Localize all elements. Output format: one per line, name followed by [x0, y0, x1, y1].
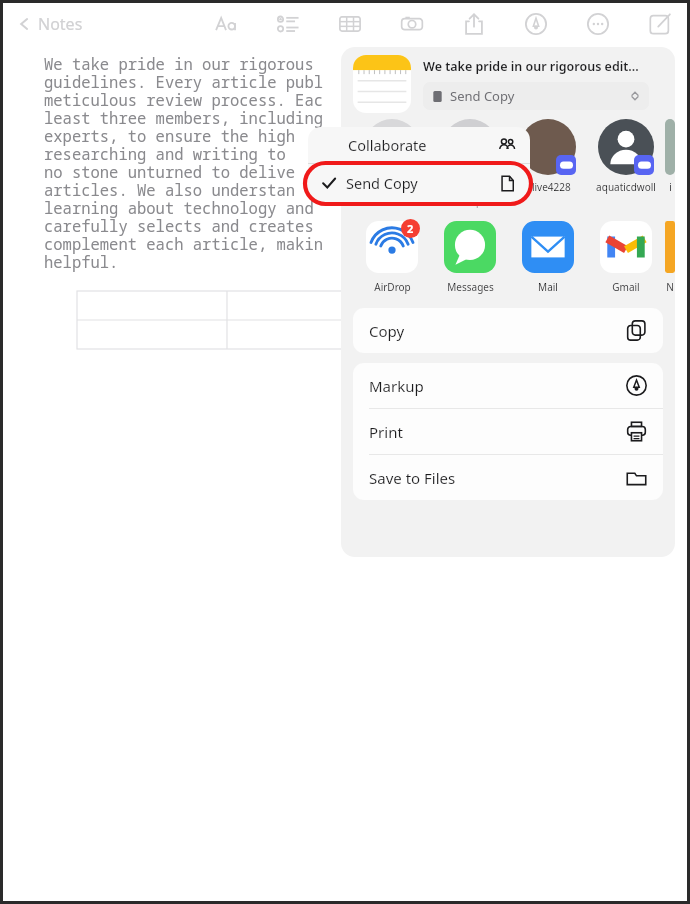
button[interactable]: Alphr and +639... — [431, 119, 509, 209]
staticText: Markup — [369, 376, 424, 396]
button[interactable]: i — [665, 119, 675, 194]
button[interactable]: Copy — [353, 308, 663, 353]
button[interactable]: Markup — [523, 11, 549, 37]
button[interactable]: ALphr Spy — [353, 119, 431, 194]
staticText: Mail — [538, 280, 558, 294]
staticText: Messages — [447, 280, 494, 294]
button[interactable]: Camera — [399, 11, 425, 37]
staticText: 2 — [407, 221, 414, 236]
button[interactable]: Checklist — [275, 11, 301, 37]
button[interactable]: Compose — [647, 11, 673, 37]
staticText: Send Copy — [346, 173, 418, 193]
button[interactable]: Messages — [431, 219, 509, 294]
staticText: Alphr and +639... — [431, 180, 509, 194]
staticText: ALphr Spy — [367, 180, 417, 194]
button[interactable]: Mail — [509, 219, 587, 294]
button[interactable]: We take pride in our rigorous edit... — [353, 55, 663, 113]
staticText: Print — [369, 422, 403, 442]
staticText: We take pride in our rigorous edit... — [423, 58, 639, 75]
button[interactable]: Gmail — [587, 219, 665, 294]
button[interactable]: Share — [461, 11, 487, 37]
staticText: Copy — [369, 321, 405, 341]
button[interactable]: aquaticdwoll — [587, 119, 665, 194]
button[interactable]: Print — [353, 409, 663, 454]
staticText: Collaborate — [348, 135, 427, 155]
button[interactable]: Save to Files — [353, 455, 663, 500]
button[interactable]: 2 — [353, 219, 431, 294]
staticText: AirDrop — [374, 280, 411, 294]
button[interactable]: alive4228 — [509, 119, 587, 194]
button[interactable]: Notes — [17, 13, 83, 35]
button[interactable]: Markup — [353, 363, 663, 408]
button[interactable]: Send Copy — [308, 164, 530, 202]
staticText: Save to Files — [369, 468, 456, 488]
button[interactable]: Send Copy — [432, 87, 640, 105]
staticText: alive4228 — [526, 180, 571, 194]
staticText: i — [669, 180, 672, 194]
button[interactable]: N — [665, 219, 675, 294]
staticText: 2 People — [451, 196, 490, 209]
button[interactable]: Table — [337, 11, 363, 37]
staticText: Notes — [38, 13, 83, 35]
staticText: Gmail — [612, 280, 640, 294]
button[interactable]: Collaborate — [308, 127, 530, 163]
staticText: Send Copy — [450, 87, 515, 105]
staticText: We take pride in our rigorous guidelines… — [44, 53, 324, 273]
button[interactable]: More — [585, 11, 611, 37]
staticText: aquaticdwoll — [596, 180, 656, 194]
button[interactable]: Format text — [213, 11, 239, 37]
staticText: N — [666, 280, 674, 294]
